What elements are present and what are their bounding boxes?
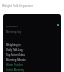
button[interactable]: Add <box>57 24 59 26</box>
button[interactable]: Morning Minute <box>3 57 61 62</box>
staticText: Water Tracker <box>6 63 23 67</box>
button[interactable]: Water Tracker <box>3 62 61 67</box>
staticText: Top Secret Idea <box>6 53 25 57</box>
staticText: Weighing in <box>6 43 21 47</box>
staticText: Organizer <box>6 24 18 27</box>
button[interactable]: Select Meeting <box>3 67 61 72</box>
staticText: Morning Minute <box>6 58 26 62</box>
staticText: Daily Talk Log <box>6 48 23 52</box>
button[interactable]: Top Secret Idea <box>3 52 61 57</box>
staticText: Select Meeting <box>6 68 24 72</box>
button[interactable]: Daily Talk Log <box>3 47 61 52</box>
button[interactable]: Weighing in <box>3 42 61 47</box>
button[interactable]: Morning log <box>3 29 61 34</box>
staticText: Morning log <box>6 30 21 34</box>
staticText: Weight Talk Organizer <box>2 4 34 8</box>
